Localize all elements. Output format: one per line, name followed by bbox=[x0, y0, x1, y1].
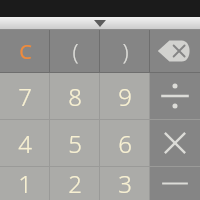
button[interactable]: Clear bbox=[0, 30, 50, 72]
button[interactable]: Collapse keypad bbox=[0, 17, 200, 30]
button[interactable]: 5 bbox=[50, 120, 100, 166]
button[interactable]: Divide bbox=[150, 73, 200, 119]
button[interactable]: 2 bbox=[50, 167, 100, 200]
button[interactable]: Minus bbox=[150, 167, 200, 200]
staticText: 8 bbox=[68, 80, 82, 113]
button[interactable]: Multiply bbox=[150, 120, 200, 166]
staticText: 7 bbox=[18, 80, 32, 113]
staticText: 1 bbox=[18, 167, 32, 200]
staticText: 4 bbox=[18, 127, 32, 160]
staticText: 3 bbox=[118, 167, 132, 200]
button[interactable]: 8 bbox=[50, 73, 100, 119]
button[interactable]: Open parenthesis bbox=[50, 30, 100, 72]
button[interactable]: 1 bbox=[0, 167, 50, 200]
button[interactable]: 4 bbox=[0, 120, 50, 166]
staticText: 9 bbox=[118, 80, 132, 113]
staticText: 6 bbox=[118, 127, 132, 160]
staticText: C bbox=[19, 38, 32, 65]
button[interactable]: 6 bbox=[100, 120, 150, 166]
staticText: ( bbox=[72, 36, 79, 66]
button[interactable]: 7 bbox=[0, 73, 50, 119]
staticText: 5 bbox=[68, 127, 82, 160]
button[interactable]: 3 bbox=[100, 167, 150, 200]
button[interactable]: Backspace bbox=[150, 30, 200, 72]
button[interactable]: 9 bbox=[100, 73, 150, 119]
button[interactable]: Close parenthesis bbox=[100, 30, 150, 72]
staticText: ) bbox=[122, 36, 129, 66]
staticText: 2 bbox=[68, 167, 82, 200]
